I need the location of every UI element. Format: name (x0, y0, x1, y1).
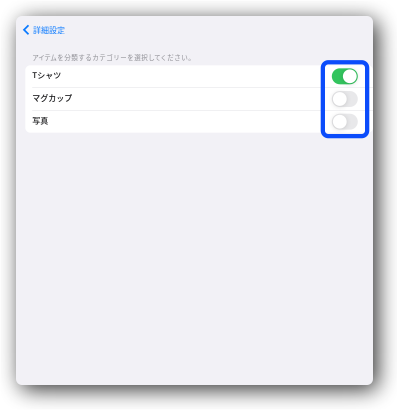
staticText: 詳細設定 (33, 24, 65, 36)
button[interactable]: 詳細設定 (16, 18, 74, 42)
button[interactable]: Tシャツ (25, 65, 373, 87)
button[interactable]: 写真 (25, 111, 373, 133)
staticText: アイテムを分類するカテゴリーを選択してください。 (32, 52, 195, 62)
staticText: マグカップ (32, 92, 72, 103)
staticText: Tシャツ (32, 69, 61, 80)
button[interactable]: マグカップ (25, 88, 373, 110)
staticText: 写真 (32, 114, 48, 126)
